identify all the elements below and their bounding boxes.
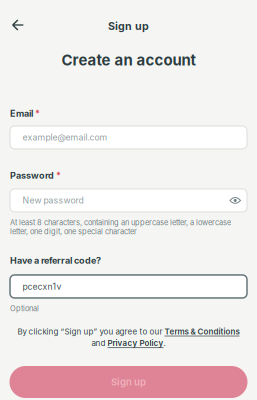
staticText: and: [91, 338, 107, 348]
staticText: New password: [22, 195, 83, 206]
staticText: Terms & Conditions: [164, 327, 239, 336]
staticText: *: [56, 170, 61, 181]
staticText: Password: [10, 170, 54, 181]
staticText: Create an account: [61, 51, 195, 69]
staticText: pcecxn1v: [22, 281, 61, 292]
button[interactable]: Privacy Policy: [107, 338, 163, 348]
staticText: By clicking “Sign up” you agree to our: [17, 327, 164, 336]
button[interactable]: Show password: [229, 196, 241, 205]
staticText: *: [35, 108, 40, 119]
button[interactable]: Sign up: [9, 366, 247, 398]
staticText: Optional: [10, 304, 39, 313]
button[interactable]: Back: [4, 13, 34, 39]
button[interactable]: Terms & Conditions: [164, 327, 239, 336]
staticText: Sign up: [111, 376, 146, 388]
staticText: Sign up: [108, 19, 149, 32]
staticText: Email: [10, 108, 33, 119]
staticText: .: [163, 338, 165, 348]
staticText: At least 8 characters, containing an upp…: [10, 218, 231, 236]
staticText: example@email.com: [22, 132, 107, 143]
staticText: Have a referral code?: [10, 255, 101, 266]
staticText: Privacy Policy: [107, 338, 163, 348]
